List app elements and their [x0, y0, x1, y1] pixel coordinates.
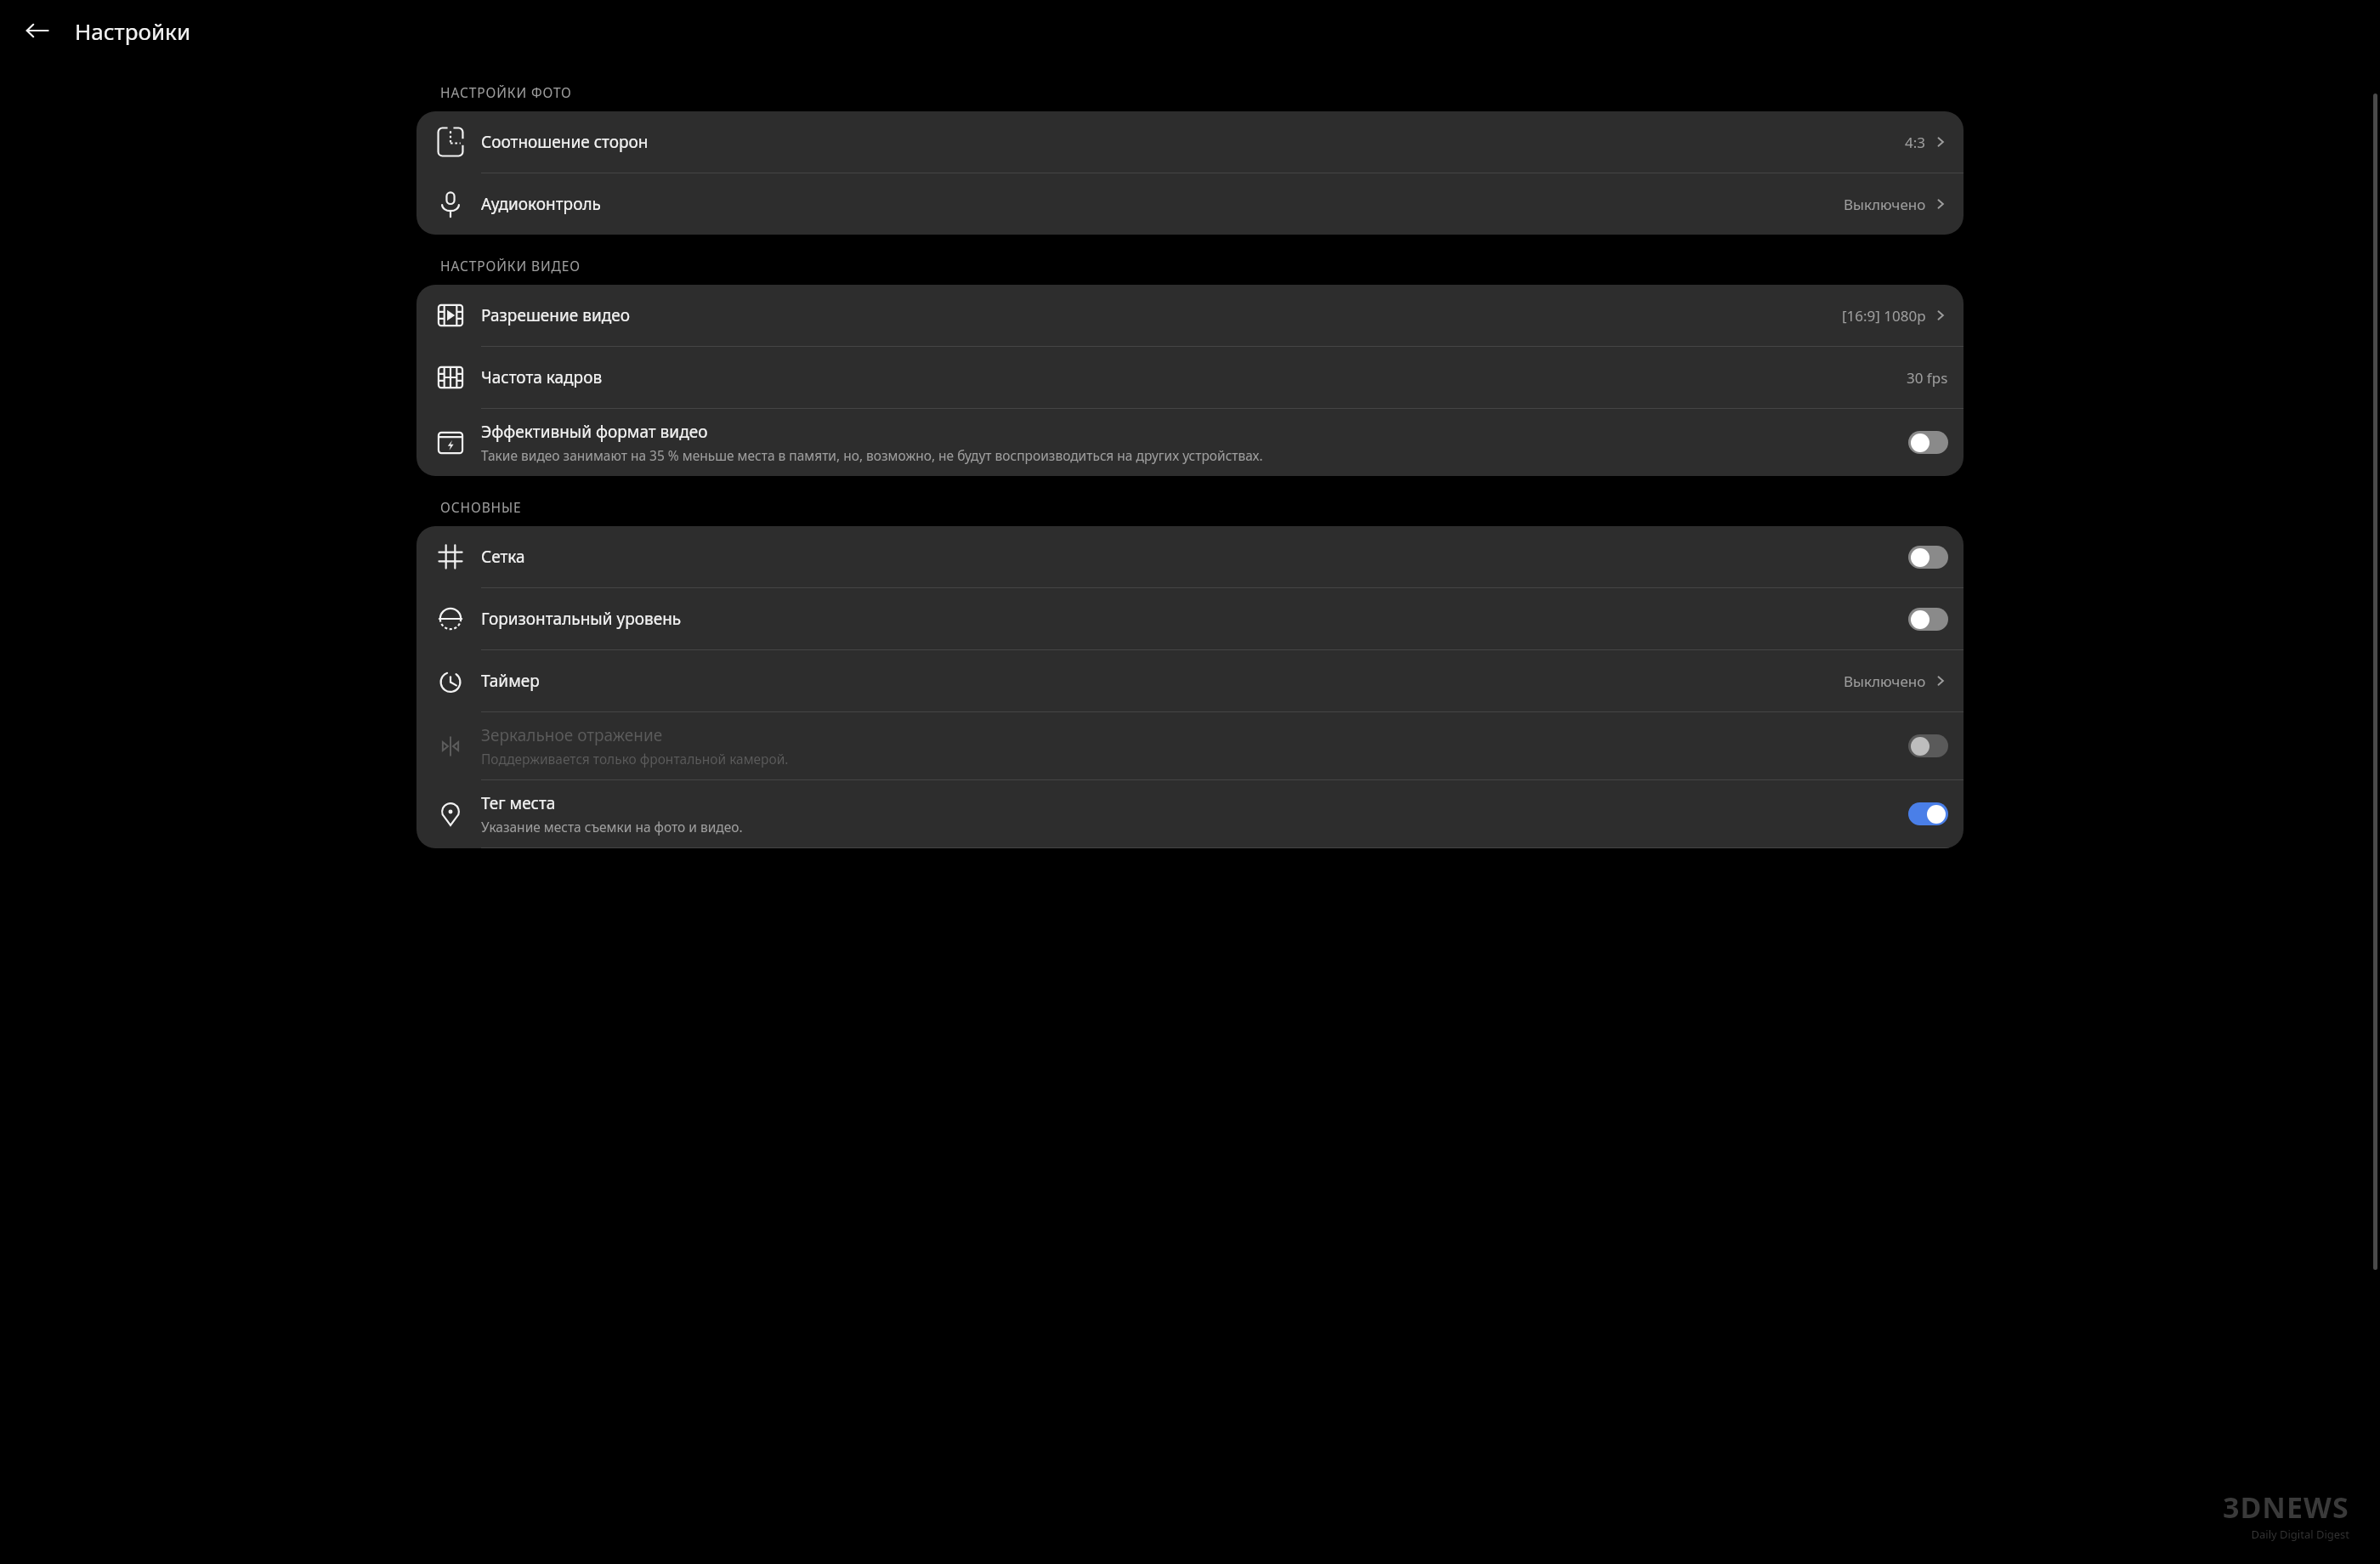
staticText: Daily Digital Digest — [2251, 1527, 2349, 1542]
staticText: Горизонтальный уровень — [481, 608, 682, 630]
staticText: Поддерживается только фронтальной камеро… — [481, 750, 789, 768]
staticText: Частота кадров — [481, 366, 603, 388]
staticText: Выключено — [1844, 671, 1926, 691]
button[interactable]: Тег места — [416, 780, 1963, 848]
staticText: Сетка — [481, 546, 525, 568]
staticText: [16:9] 1080p — [1842, 306, 1926, 326]
staticText: Выключено — [1844, 195, 1926, 214]
button[interactable]: Back — [15, 8, 59, 53]
staticText: Соотношение сторон — [481, 131, 649, 153]
staticText: НАСТРОЙКИ ВИДЕО — [440, 257, 581, 275]
staticText: Тег места — [481, 792, 556, 814]
button[interactable]: Зеркальное отражение — [416, 712, 1963, 780]
button[interactable]: Соотношение сторон — [416, 111, 1963, 173]
staticText: 3DNEWS — [2223, 1487, 2349, 1527]
button[interactable]: Разрешение видео — [416, 285, 1963, 347]
button[interactable] — [1908, 431, 1948, 454]
button[interactable] — [1908, 608, 1948, 631]
button[interactable]: Горизонтальный уровень — [416, 588, 1963, 650]
button[interactable] — [1908, 546, 1948, 569]
staticText: Аудиоконтроль — [481, 193, 601, 215]
staticText: 4:3 — [1905, 133, 1926, 152]
staticText: 30 fps — [1907, 368, 1948, 388]
button[interactable] — [1908, 734, 1948, 757]
button[interactable]: Сетка — [416, 526, 1963, 588]
staticText: Таймер — [481, 670, 540, 692]
staticText: НАСТРОЙКИ ФОТО — [440, 83, 572, 101]
button[interactable] — [1908, 802, 1948, 825]
button[interactable]: Аудиоконтроль — [416, 173, 1963, 235]
staticText: Эффективный формат видео — [481, 421, 708, 443]
button[interactable]: Эффективный формат видео — [416, 409, 1963, 476]
button[interactable]: Частота кадров — [416, 347, 1963, 409]
staticText: Настройки — [75, 16, 191, 46]
button[interactable]: Таймер — [416, 650, 1963, 712]
staticText: Указание места съемки на фото и видео. — [481, 818, 743, 836]
staticText: Такие видео занимают на 35 % меньше мест… — [481, 446, 1263, 464]
staticText: Разрешение видео — [481, 304, 631, 326]
staticText: ОСНОВНЫЕ — [440, 498, 522, 516]
staticText: Зеркальное отражение — [481, 724, 663, 746]
